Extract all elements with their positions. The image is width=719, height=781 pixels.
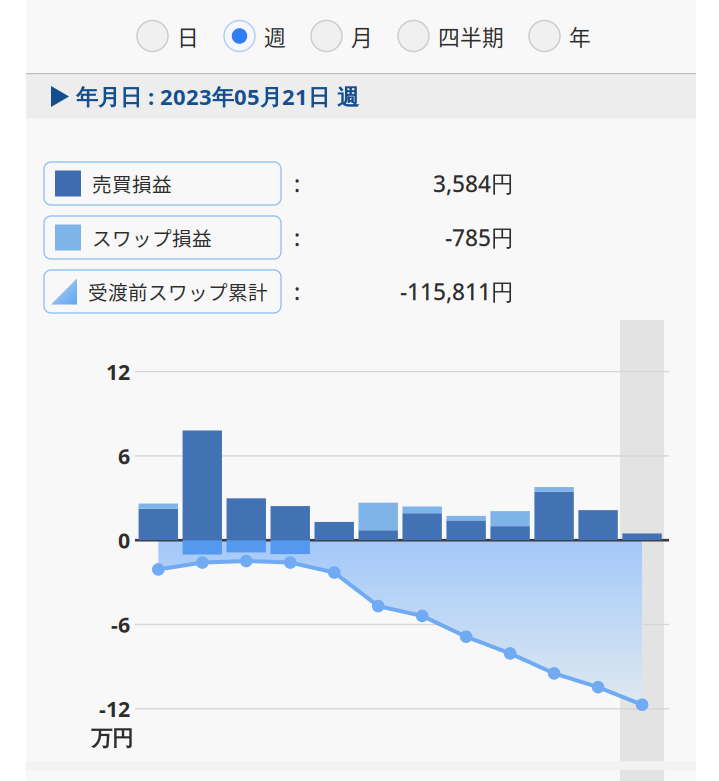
staticText: 受渡前スワップ累計 xyxy=(88,277,268,306)
button[interactable]: 四半期 xyxy=(398,14,504,58)
staticText: : xyxy=(294,276,300,307)
staticText: : xyxy=(294,222,300,253)
staticText: 0 xyxy=(118,526,130,555)
staticText: 売買損益 xyxy=(92,169,172,198)
button[interactable]: 売買損益 xyxy=(44,162,281,205)
staticText: 四半期 xyxy=(438,20,504,52)
staticText: -785円 xyxy=(445,222,514,253)
staticText: 日 xyxy=(177,20,199,52)
button[interactable]: 月 xyxy=(311,14,373,58)
button[interactable]: 年 xyxy=(529,14,591,58)
staticText: 12 xyxy=(106,357,130,386)
staticText: -12 xyxy=(99,694,130,723)
button[interactable]: スワップ損益 xyxy=(44,216,281,259)
staticText: : xyxy=(294,168,300,199)
staticText: スワップ損益 xyxy=(92,223,212,252)
staticText: 月 xyxy=(351,20,373,52)
staticText: 万円 xyxy=(91,725,133,752)
staticText: 年月日 : 2023年05月21日 週 xyxy=(76,81,359,111)
staticText: 6 xyxy=(118,441,130,470)
button[interactable]: 日 xyxy=(137,14,199,58)
staticText: -6 xyxy=(111,610,130,639)
button[interactable]: 週 xyxy=(224,14,286,58)
button[interactable]: 年月日 : 2023年05月21日 週 xyxy=(51,74,359,118)
button[interactable]: 受渡前スワップ累計 xyxy=(44,270,281,313)
staticText: -115,811円 xyxy=(400,276,514,307)
staticText: 年 xyxy=(569,20,591,52)
staticText: 週 xyxy=(264,20,286,52)
staticText: 3,584円 xyxy=(433,168,514,199)
